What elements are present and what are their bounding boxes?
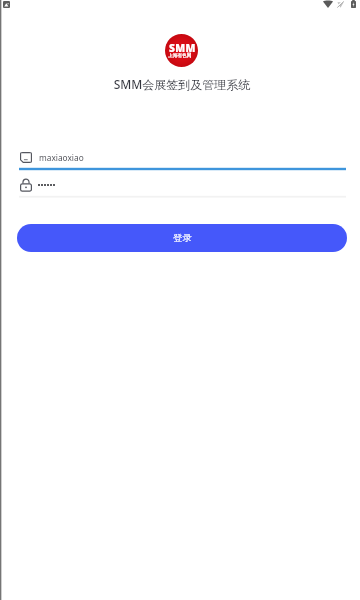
staticText: SMM: [169, 41, 196, 55]
button[interactable]: SMM: [165, 34, 198, 67]
staticText: 登录: [173, 232, 192, 244]
other: No signal: [337, 1, 344, 8]
staticText: maxiaoxiao: [39, 152, 84, 163]
button[interactable]: [17, 174, 347, 199]
staticText: SMM会展签到及管理系统: [2, 76, 360, 92]
other: Battery charging: [351, 0, 356, 8]
staticText: 上海有色网: [168, 53, 192, 59]
button[interactable]: maxiaoxiao: [17, 144, 347, 171]
other: Notification: [3, 1, 10, 8]
button[interactable]: 登录: [17, 224, 347, 252]
other: Wi-Fi: [323, 1, 333, 8]
